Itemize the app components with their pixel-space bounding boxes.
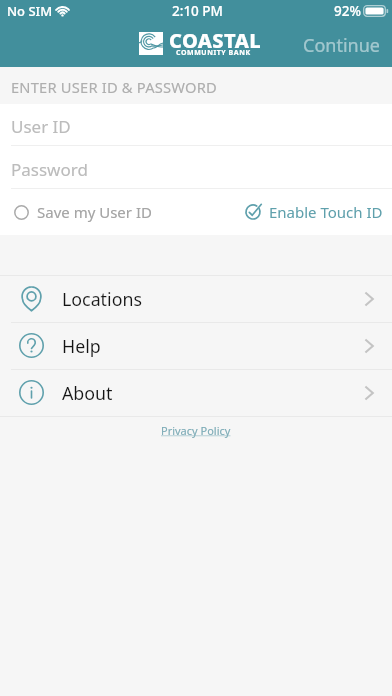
- staticText: User ID: [11, 115, 71, 138]
- button[interactable]: Locations: [0, 275, 392, 322]
- staticText: Help: [62, 334, 101, 358]
- staticText: ENTER USER ID & PASSWORD: [11, 77, 217, 97]
- staticText: 2:10 PM: [172, 2, 223, 20]
- staticText: About: [62, 381, 113, 405]
- button[interactable]: User ID: [0, 104, 392, 145]
- staticText: Save my User ID: [37, 202, 152, 222]
- staticText: Continue: [303, 33, 380, 58]
- button[interactable]: Password: [0, 145, 392, 188]
- staticText: Locations: [62, 287, 142, 311]
- button[interactable]: Help: [0, 322, 392, 369]
- button[interactable]: Save my User ID: [0, 194, 160, 230]
- staticText: COMMUNITY BANK: [176, 48, 251, 58]
- staticText: No SIM: [7, 2, 53, 20]
- staticText: Password: [11, 158, 88, 181]
- button[interactable]: Enable Touch ID: [237, 194, 392, 230]
- button[interactable]: Privacy Policy: [161, 423, 231, 438]
- staticText: 92%: [334, 2, 361, 20]
- button[interactable]: About: [0, 369, 392, 416]
- button[interactable]: Continue: [289, 28, 392, 63]
- staticText: Enable Touch ID: [269, 202, 383, 222]
- staticText: COASTAL: [169, 27, 262, 54]
